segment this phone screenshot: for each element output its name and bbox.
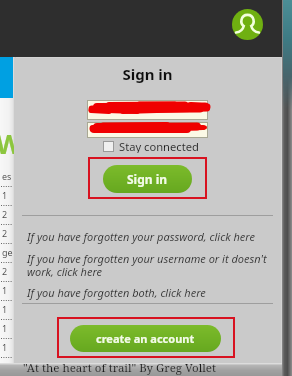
staticText: 1 [2,189,8,208]
staticText: 1 [2,360,8,376]
staticText: Sign in [14,64,281,84]
button[interactable]: If you have forgotten your password, cli… [27,229,255,244]
staticText: Sign in [127,171,168,187]
button[interactable]: create an account [70,325,221,352]
staticText: "At the heart of trail" By Greg Vollet [23,360,217,376]
staticText: create an account [96,331,195,346]
staticText: 1 [2,322,8,341]
staticText: 2 [2,265,8,284]
staticText: 1 [2,284,8,303]
button[interactable]: Account [232,9,263,40]
staticText: 2 [2,227,8,246]
staticText: es [2,170,12,189]
button[interactable]: If you have forgotten your username or i… [27,251,267,266]
staticText: 2 [2,208,8,227]
staticText: ge [2,246,13,265]
staticText: 1 [2,303,8,322]
staticText: W [0,125,23,162]
button[interactable]: work, click here [27,264,103,279]
button[interactable]: Stay connected [103,139,199,153]
button[interactable]: Sign in [103,165,192,193]
staticText: Stay connected [119,139,199,153]
button[interactable]: If you have forgotten both, click here [27,285,206,300]
staticText: 1 [2,341,8,360]
